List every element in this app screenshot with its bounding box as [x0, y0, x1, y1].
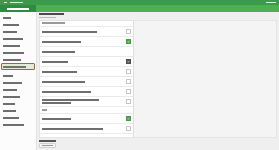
button[interactable]: Option disabled: [39, 67, 134, 76]
button[interactable]: [39, 47, 134, 56]
button[interactable]: [0, 114, 36, 121]
button[interactable]: [0, 100, 36, 107]
button[interactable]: [0, 93, 36, 100]
button[interactable]: [0, 121, 36, 128]
button[interactable]: Option disabled: [39, 87, 134, 96]
button[interactable]: [0, 35, 36, 42]
button[interactable]: [0, 79, 36, 86]
button[interactable]: Option enabled: [126, 59, 131, 64]
button[interactable]: [0, 28, 36, 35]
button[interactable]: Open navigation menu: [3, 1, 8, 4]
button[interactable]: [0, 49, 36, 56]
button[interactable]: Option disabled: [126, 79, 131, 84]
button[interactable]: Option disabled: [39, 97, 134, 106]
button[interactable]: [0, 21, 36, 28]
button[interactable]: Option disabled: [39, 134, 134, 138]
button[interactable]: Option enabled: [39, 37, 134, 46]
button[interactable]: Option disabled: [126, 69, 131, 74]
button[interactable]: Option enabled: [126, 116, 131, 121]
button[interactable]: Option disabled: [39, 77, 134, 86]
button[interactable]: Option disabled: [39, 124, 134, 133]
button[interactable]: Option enabled: [126, 39, 131, 44]
button[interactable]: [0, 14, 36, 21]
button[interactable]: [0, 72, 36, 79]
button[interactable]: Option enabled: [39, 114, 134, 123]
button[interactable]: [266, 1, 276, 4]
button[interactable]: Option disabled: [126, 99, 131, 104]
button[interactable]: [0, 5, 36, 12]
button[interactable]: [0, 107, 36, 114]
button[interactable]: [1, 63, 35, 70]
button[interactable]: [0, 56, 36, 63]
button[interactable]: Option disabled: [126, 126, 131, 131]
button[interactable]: Option disabled: [126, 89, 131, 94]
button[interactable]: Option enabled: [39, 57, 134, 66]
button[interactable]: [39, 143, 56, 148]
button[interactable]: [10, 1, 23, 4]
button[interactable]: [0, 42, 36, 49]
button[interactable]: Option disabled: [126, 29, 131, 34]
button[interactable]: Option disabled: [39, 27, 134, 36]
button[interactable]: [0, 86, 36, 93]
